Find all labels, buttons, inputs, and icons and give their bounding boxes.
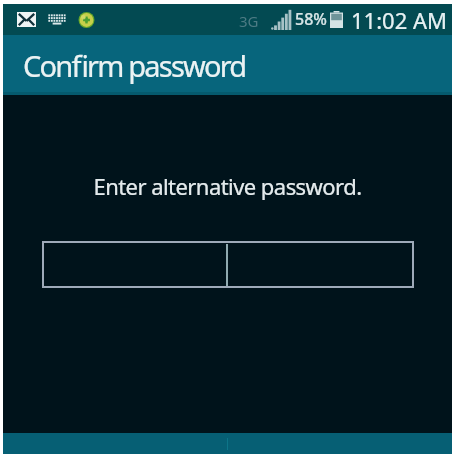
staticText: 3G bbox=[239, 11, 259, 31]
other: Mail bbox=[17, 12, 36, 27]
other: Signal strength bbox=[271, 9, 293, 30]
staticText: Confirm password bbox=[23, 46, 246, 85]
button[interactable]: Confirm password bbox=[3, 35, 452, 95]
staticText: 58% bbox=[295, 8, 327, 30]
staticText: 11:02 AM bbox=[351, 5, 447, 35]
other: Keyboard bbox=[48, 14, 66, 25]
button[interactable]: Password field bbox=[42, 241, 414, 288]
other: Updates bbox=[78, 12, 95, 28]
staticText: Enter alternative password. bbox=[3, 171, 452, 201]
other: Battery bbox=[330, 11, 343, 28]
